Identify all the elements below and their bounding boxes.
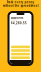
button[interactable] [11, 53, 30, 55]
staticText: without the spreadsheet [2, 4, 38, 7]
button[interactable] [11, 49, 30, 52]
staticText: Track every penny [6, 0, 34, 4]
staticText: $4,280.55 [11, 21, 27, 25]
staticText: Accounts [11, 16, 23, 19]
button[interactable] [11, 56, 30, 59]
button[interactable] [11, 46, 30, 48]
